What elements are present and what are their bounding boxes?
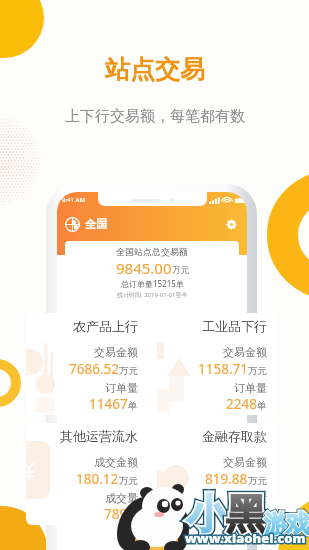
staticText: 9:41 AM [62,196,85,204]
staticText: 万元 [119,475,138,487]
staticText: 上下行交易额，每笔都有数 [65,107,245,126]
staticText: 2248 [226,395,257,413]
staticText: 789 [104,505,128,523]
staticText: 1288 [226,505,257,523]
staticText: 小 [187,489,227,539]
staticText: 戏 [286,509,309,539]
staticText: 戏 [286,509,309,539]
staticText: 成交量 [105,491,138,505]
staticText: 7686.52 [69,360,119,378]
staticText: 交易金额 [223,345,267,359]
staticText: 游 [264,509,288,539]
staticText: 站点交易 [105,54,205,85]
staticText: 成交金额 [94,455,138,469]
staticText: 游 [264,509,288,539]
staticText: 游 [264,509,288,539]
staticText: 黑 [226,489,266,539]
staticText: 全国站点总交易额 [116,246,188,257]
staticText: 180.12 [76,470,119,488]
staticText: 农产品上行 [73,318,138,334]
staticText: 万元 [172,265,189,276]
button[interactable]: 其他运营流水 [26,423,147,525]
staticText: 万元 [248,365,267,377]
staticText: 交易量 [234,491,267,505]
staticText: 9845.00 [116,258,172,278]
staticText: 统计时间: 2019-01-01至今 [117,291,188,299]
staticText: 单 [128,400,138,412]
staticText: www.xiaohei.com [185,529,306,547]
staticText: 单 [257,510,267,522]
staticText: 黑 [226,489,266,539]
button[interactable]: 农产品上行 [26,313,147,415]
staticText: 交易金额 [94,345,138,359]
button[interactable]: 工业品下行 [157,313,276,415]
staticText: 小 [187,489,227,539]
staticText: 订单量 [234,381,267,395]
staticText: 万元 [119,365,138,377]
staticText: 总订单量15215单 [121,278,184,289]
staticText: 单 [128,510,138,522]
staticText: 其他运营流水 [60,428,138,444]
staticText: 金融存取款 [202,428,267,444]
staticText: 交易金额 [223,455,267,469]
staticText: 单 [257,400,267,412]
staticText: www.xiaohei.com [185,529,306,547]
staticText: 黑 [226,489,266,539]
staticText: 万元 [248,475,267,487]
staticText: 819.88 [205,470,248,488]
staticText: 工业品下行 [202,318,267,334]
staticText: 小 [187,489,227,539]
staticText: 11467 [89,395,128,413]
button[interactable]: 金融存取款 [157,423,276,525]
button[interactable]: Settings [223,216,239,232]
staticText: 全国 [85,217,107,231]
staticText: 1158.71 [198,360,248,378]
staticText: 订单量 [105,381,138,395]
staticText: 戏 [286,509,309,539]
